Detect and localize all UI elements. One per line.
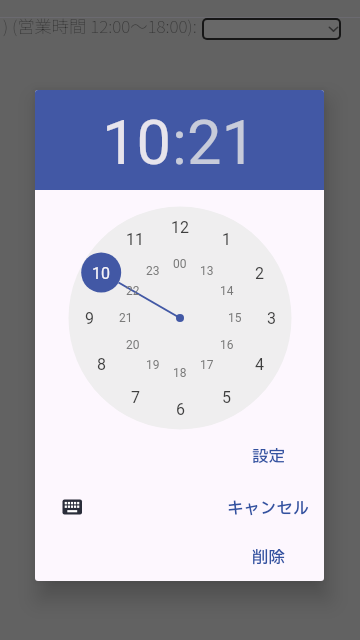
staticText: 14 [220, 284, 234, 298]
staticText: 15 [228, 311, 242, 325]
staticText: 9 [85, 309, 94, 328]
staticText: 6 [176, 400, 185, 419]
staticText: :21 [172, 107, 257, 179]
button[interactable]: キャンセル [208, 487, 324, 531]
staticText: ) (営業時間 12:00〜18:00): [3, 13, 197, 38]
button[interactable] [52, 492, 92, 522]
staticText: 1 [222, 230, 231, 249]
staticText: 7 [131, 388, 140, 407]
staticText: 23 [146, 264, 160, 278]
button[interactable]: 設定 [208, 435, 324, 479]
staticText: 16 [220, 338, 234, 352]
staticText: 22 [126, 284, 140, 298]
staticText: 8 [97, 355, 106, 374]
staticText: 18 [173, 366, 187, 380]
staticText: 10 [102, 107, 172, 179]
staticText: 設定 [252, 445, 285, 470]
staticText: 20 [126, 338, 140, 352]
staticText: キャンセル [227, 497, 310, 522]
staticText: 12 [171, 218, 189, 237]
staticText: 13 [200, 264, 214, 278]
staticText: 11 [126, 230, 144, 249]
button[interactable] [202, 18, 341, 40]
staticText: 2 [255, 264, 264, 283]
staticText: 4 [255, 355, 264, 374]
staticText: 10 [92, 264, 110, 283]
staticText: 19 [146, 358, 160, 372]
staticText: 17 [200, 358, 214, 372]
staticText: 3 [267, 309, 276, 328]
button[interactable]: 削除 [208, 536, 324, 580]
staticText: 削除 [252, 546, 285, 571]
staticText: 5 [222, 388, 231, 407]
staticText: 21 [119, 311, 133, 325]
staticText: 00 [173, 257, 187, 271]
